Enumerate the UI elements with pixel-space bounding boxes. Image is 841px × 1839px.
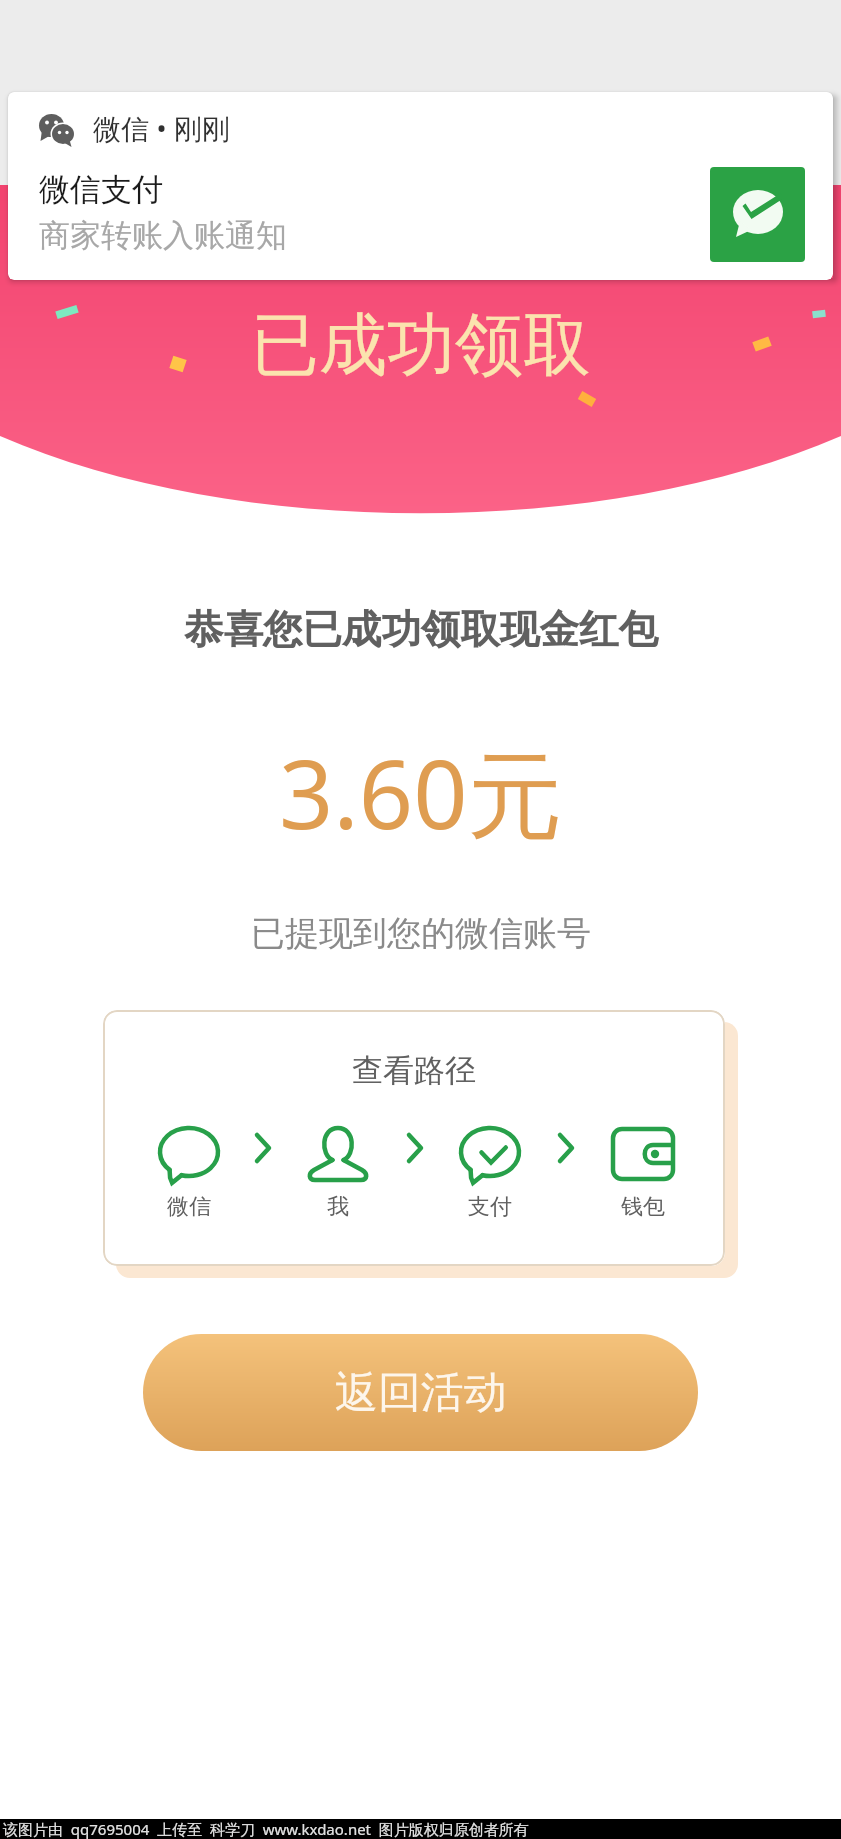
button[interactable]: 钱包 (610, 1125, 676, 1221)
other: WeChat (39, 114, 75, 146)
staticText: 该图片由 qq7695004 上传至 科学刀 www.kxdao.net 图片版… (3, 1819, 529, 1839)
button[interactable]: 查看路径 (103, 1010, 725, 1266)
staticText: 返回活动 (335, 1366, 507, 1420)
staticText: 支付 (468, 1193, 512, 1221)
staticText: 查看路径 (352, 1051, 476, 1090)
staticText: 已提现到您的微信账号 (251, 912, 591, 955)
staticText: 微信 (167, 1193, 211, 1221)
staticText: 商家转账入账通知 (39, 216, 287, 255)
button[interactable]: 微信 (156, 1125, 222, 1221)
staticText: 已成功领取 (251, 303, 591, 389)
button[interactable]: 返回活动 (143, 1334, 698, 1451)
button[interactable]: 支付 (457, 1125, 523, 1221)
staticText: 我 (327, 1193, 349, 1221)
staticText: 恭喜您已成功领取现金红包 (184, 605, 658, 655)
staticText: 微信 • 刚刚 (93, 109, 231, 147)
staticText: 3.60元 (279, 727, 563, 857)
staticText: 钱包 (621, 1193, 665, 1221)
staticText: 微信支付 (39, 170, 163, 209)
button[interactable]: 我 (305, 1125, 371, 1221)
button[interactable]: WeChat (8, 92, 833, 280)
